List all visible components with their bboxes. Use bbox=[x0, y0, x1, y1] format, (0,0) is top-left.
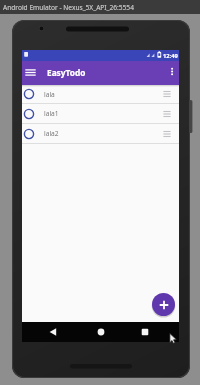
button[interactable] bbox=[41, 322, 65, 342]
button[interactable]: lala bbox=[22, 85, 179, 104]
staticText: lala2 bbox=[44, 129, 59, 138]
staticText: lala bbox=[44, 90, 55, 99]
staticText: EasyTodo bbox=[47, 67, 86, 78]
button[interactable] bbox=[24, 65, 37, 81]
staticText: lala1 bbox=[44, 109, 59, 118]
button[interactable] bbox=[89, 322, 113, 342]
button[interactable]: lala1 bbox=[22, 104, 179, 124]
button[interactable] bbox=[133, 322, 157, 342]
button[interactable] bbox=[152, 293, 175, 316]
button[interactable]: lala2 bbox=[22, 124, 179, 144]
staticText: Android Emulator - Nexus_5X_API_26:5554 bbox=[3, 3, 134, 12]
staticText: 12:49 bbox=[163, 52, 178, 60]
button[interactable] bbox=[166, 64, 178, 81]
